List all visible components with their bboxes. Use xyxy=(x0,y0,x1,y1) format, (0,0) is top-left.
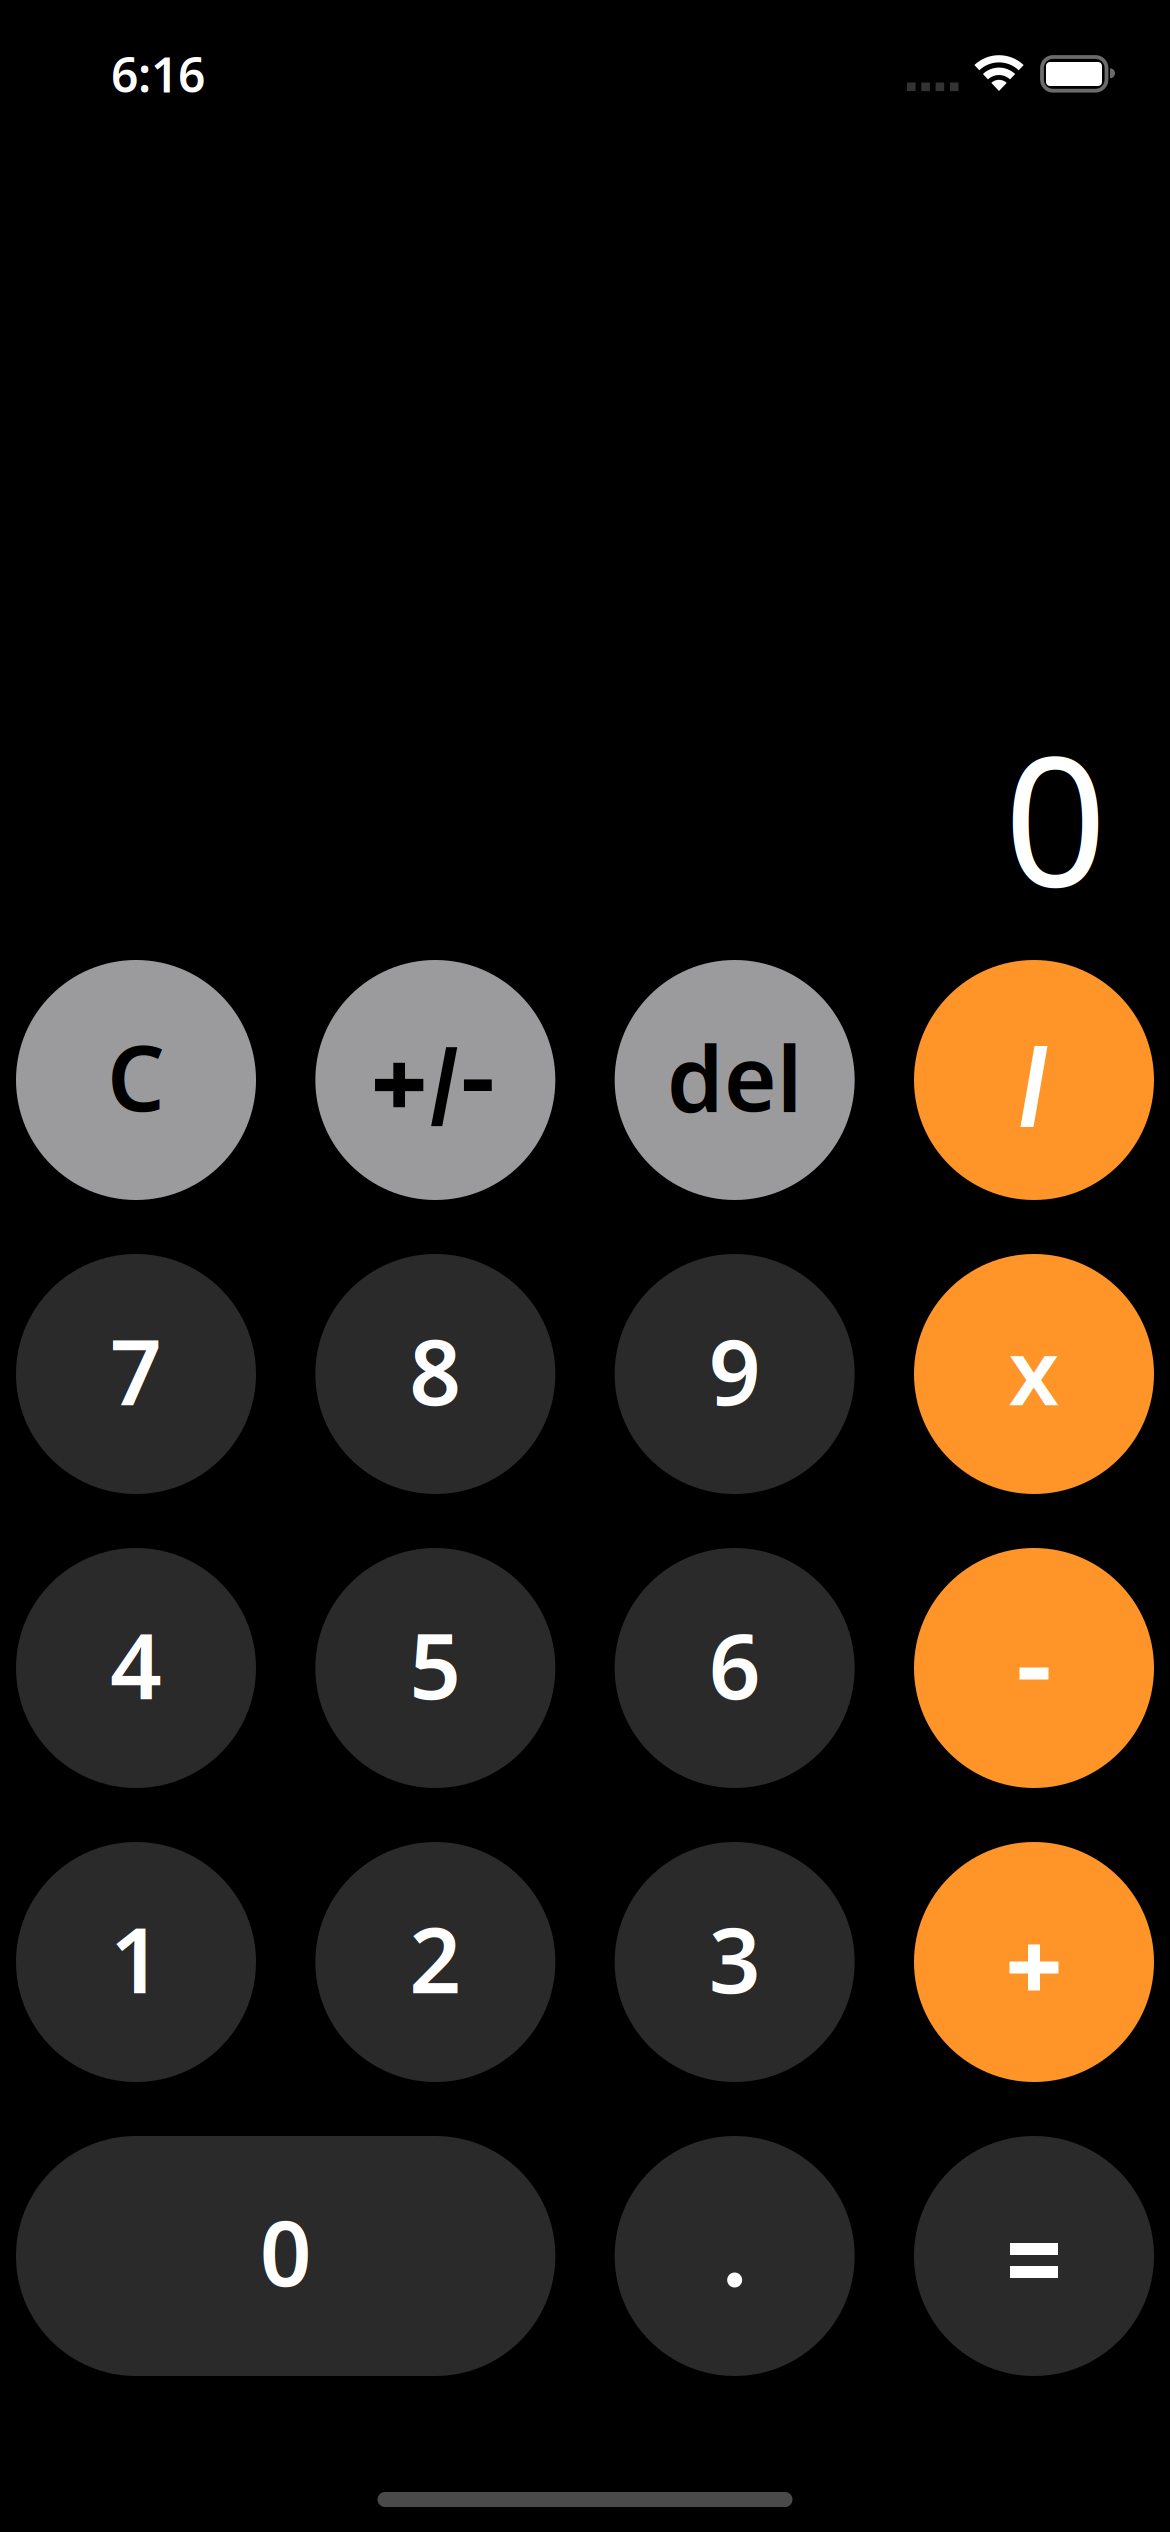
staticText: 5 xyxy=(409,1604,461,1724)
button[interactable]: 8 xyxy=(315,1254,555,1494)
staticText: 4 xyxy=(110,1604,162,1724)
staticText: 0 xyxy=(260,2191,312,2311)
staticText: 0 xyxy=(1004,697,1107,936)
staticText: 6:16 xyxy=(111,42,205,106)
button[interactable]: Decimal point xyxy=(615,2136,855,2376)
staticText: 8 xyxy=(409,1310,461,1430)
staticText: del xyxy=(667,1016,803,1136)
button[interactable]: x xyxy=(914,1254,1154,1494)
button[interactable]: 9 xyxy=(615,1254,855,1494)
button[interactable]: 7 xyxy=(16,1254,256,1494)
staticText: 7 xyxy=(110,1310,162,1430)
staticText: C xyxy=(107,1016,165,1136)
button[interactable]: Plus xyxy=(914,1842,1154,2082)
button[interactable]: 1 xyxy=(16,1842,256,2082)
button[interactable]: 0 xyxy=(16,2136,555,2376)
button[interactable]: 5 xyxy=(315,1548,555,1788)
staticText: 6 xyxy=(709,1604,761,1724)
button[interactable]: del xyxy=(615,960,855,1200)
button[interactable]: Minus xyxy=(914,1548,1154,1788)
button[interactable]: 4 xyxy=(16,1548,256,1788)
button[interactable]: 3 xyxy=(615,1842,855,2082)
button[interactable]: 6 xyxy=(615,1548,855,1788)
staticText: 1 xyxy=(110,1898,162,2018)
button[interactable]: 2 xyxy=(315,1842,555,2082)
staticText: 2 xyxy=(409,1898,461,2018)
button[interactable]: Equals xyxy=(914,2136,1154,2376)
staticText: 9 xyxy=(709,1310,761,1430)
button[interactable]: C xyxy=(16,960,256,1200)
button[interactable]: Toggle sign xyxy=(315,960,555,1200)
staticText: x xyxy=(1008,1310,1059,1430)
button[interactable]: Divide xyxy=(914,960,1154,1200)
staticText: 3 xyxy=(709,1898,761,2018)
